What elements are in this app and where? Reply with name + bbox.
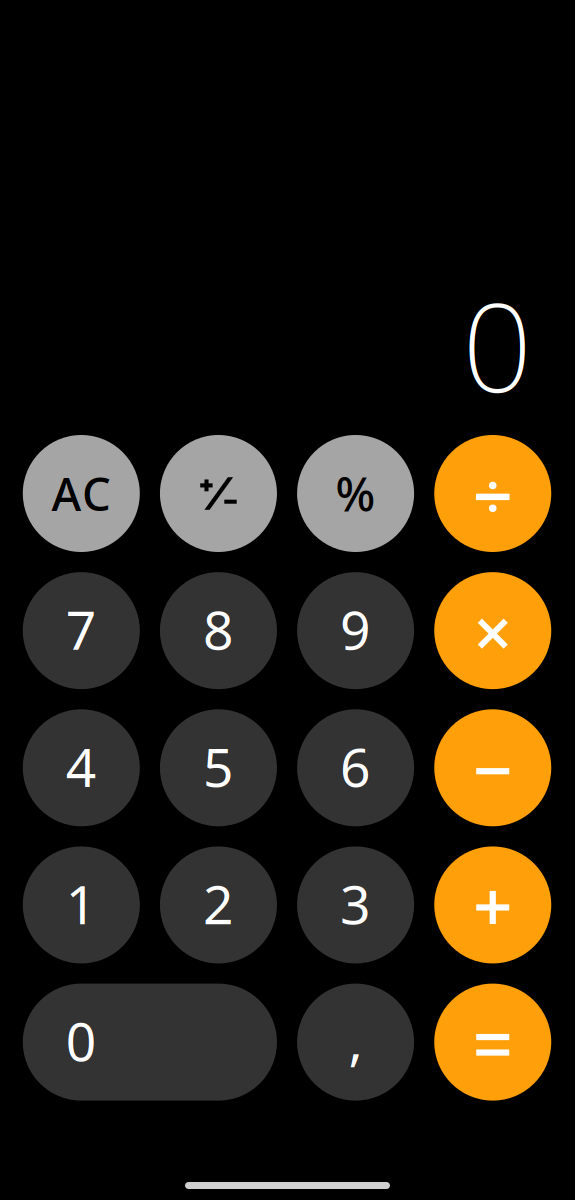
button[interactable]: One (23, 846, 140, 963)
staticText: 2 (203, 868, 234, 939)
button[interactable]: Zero (23, 984, 277, 1101)
button[interactable]: Nine (297, 572, 414, 689)
staticText: , (349, 1004, 363, 1075)
button[interactable]: Multiply (434, 572, 551, 689)
staticText: 3 (340, 868, 371, 939)
staticText: AC (51, 463, 111, 524)
staticText: 5 (203, 731, 234, 802)
button[interactable]: Divide (434, 435, 551, 552)
staticText: 6 (340, 731, 371, 802)
staticText: 9 (340, 594, 371, 664)
button[interactable]: Eight (160, 572, 277, 689)
button[interactable]: Subtract (434, 709, 551, 826)
button[interactable]: Two (160, 846, 277, 963)
staticText: 7 (66, 594, 97, 664)
button[interactable]: Decimal separator (297, 984, 414, 1101)
staticText: 0 (462, 263, 532, 426)
staticText: 8 (203, 594, 234, 664)
button[interactable]: Plus minus (160, 435, 277, 552)
button[interactable]: Five (160, 709, 277, 826)
staticText: % (336, 462, 376, 524)
staticText: 0 (66, 1005, 97, 1076)
button[interactable]: Add (434, 846, 551, 963)
button[interactable]: Six (297, 709, 414, 826)
button[interactable]: All clear (23, 435, 140, 552)
staticText: 1 (66, 868, 97, 939)
staticText: 4 (66, 731, 97, 802)
button[interactable]: Percent (297, 435, 414, 552)
button[interactable]: Four (23, 709, 140, 826)
button[interactable]: Seven (23, 572, 140, 689)
button[interactable]: Equals (434, 984, 551, 1101)
button[interactable]: Three (297, 846, 414, 963)
